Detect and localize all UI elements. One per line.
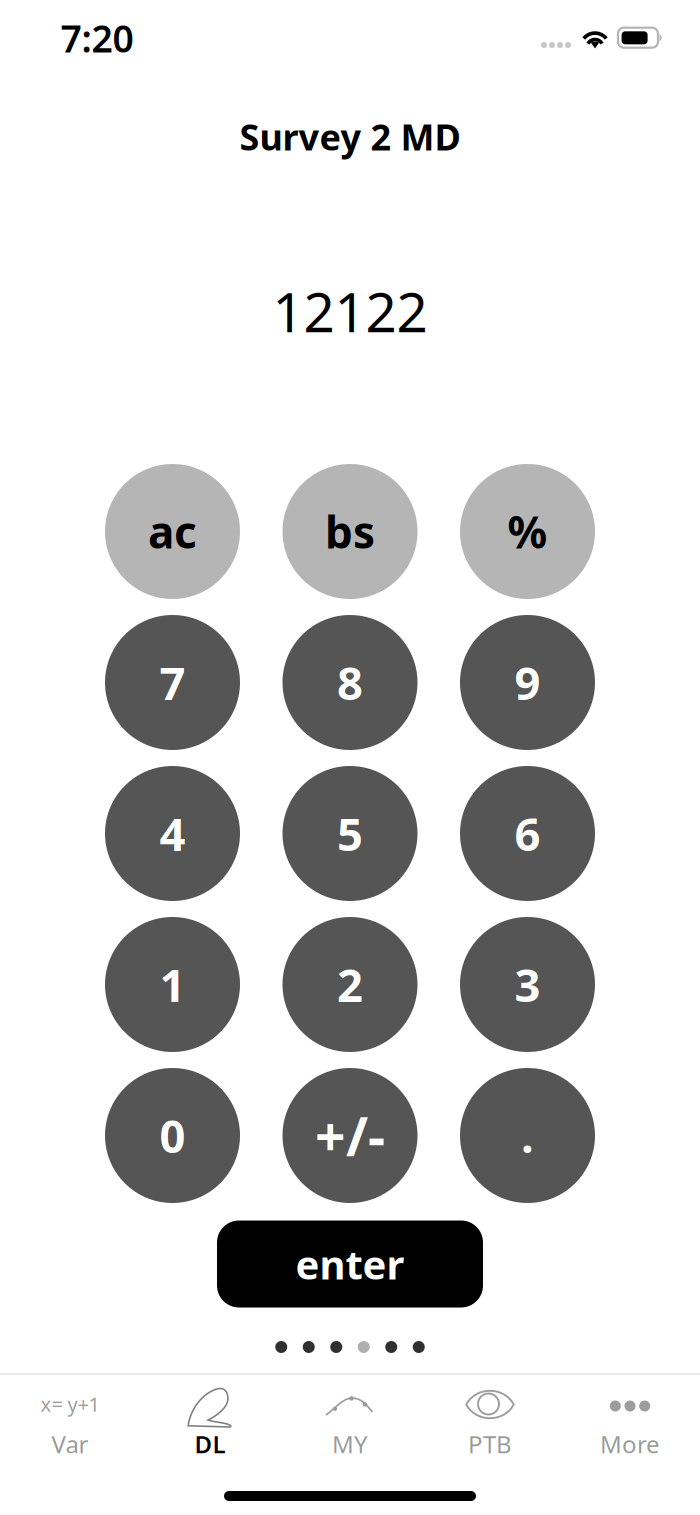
button[interactable]: DL	[140, 1375, 280, 1465]
button[interactable]: 6	[460, 766, 595, 901]
staticText: PTB	[468, 1428, 512, 1460]
button[interactable]: 7	[105, 615, 240, 750]
staticText: +/-	[315, 1100, 385, 1171]
button[interactable]: enter	[217, 1220, 483, 1307]
staticText: DL	[194, 1428, 225, 1460]
button[interactable]: ac	[105, 464, 240, 599]
button[interactable]: 3	[460, 917, 595, 1052]
staticText: ac	[148, 502, 197, 561]
staticText: Survey 2 MD	[239, 113, 460, 160]
button[interactable]: PTB	[420, 1375, 560, 1465]
button[interactable]: MY	[280, 1375, 420, 1465]
button[interactable]: 5	[282, 766, 417, 901]
staticText: 4	[159, 803, 185, 864]
staticText: x= y+1	[40, 1391, 99, 1417]
staticText: 2	[337, 954, 363, 1015]
button[interactable]: bs	[282, 464, 417, 599]
staticText: 5	[337, 803, 363, 864]
button[interactable]: +/-	[282, 1068, 417, 1203]
staticText: 0	[159, 1105, 185, 1166]
button[interactable]: 9	[460, 615, 595, 750]
button[interactable]: 8	[282, 615, 417, 750]
staticText: 9	[514, 652, 540, 713]
staticText: Var	[51, 1428, 88, 1460]
button[interactable]: 4	[105, 766, 240, 901]
staticText: %	[507, 502, 547, 561]
button[interactable]: More	[560, 1375, 700, 1465]
button[interactable]: %	[460, 464, 595, 599]
button[interactable]: 0	[105, 1068, 240, 1203]
staticText: 7:20	[60, 13, 133, 63]
button[interactable]: 2	[282, 917, 417, 1052]
staticText: 7	[159, 652, 185, 713]
button[interactable]: Var	[0, 1375, 140, 1465]
staticText: .	[521, 1105, 534, 1166]
staticText: More	[600, 1428, 660, 1460]
staticText: MY	[332, 1428, 368, 1460]
staticText: 6	[514, 803, 540, 864]
button[interactable]: 1	[105, 917, 240, 1052]
staticText: 8	[337, 652, 363, 713]
button[interactable]: .	[460, 1068, 595, 1203]
staticText: 12122	[272, 275, 427, 347]
staticText: 3	[514, 954, 540, 1015]
staticText: enter	[295, 1237, 404, 1290]
staticText: bs	[325, 502, 375, 561]
staticText: 1	[159, 954, 185, 1015]
